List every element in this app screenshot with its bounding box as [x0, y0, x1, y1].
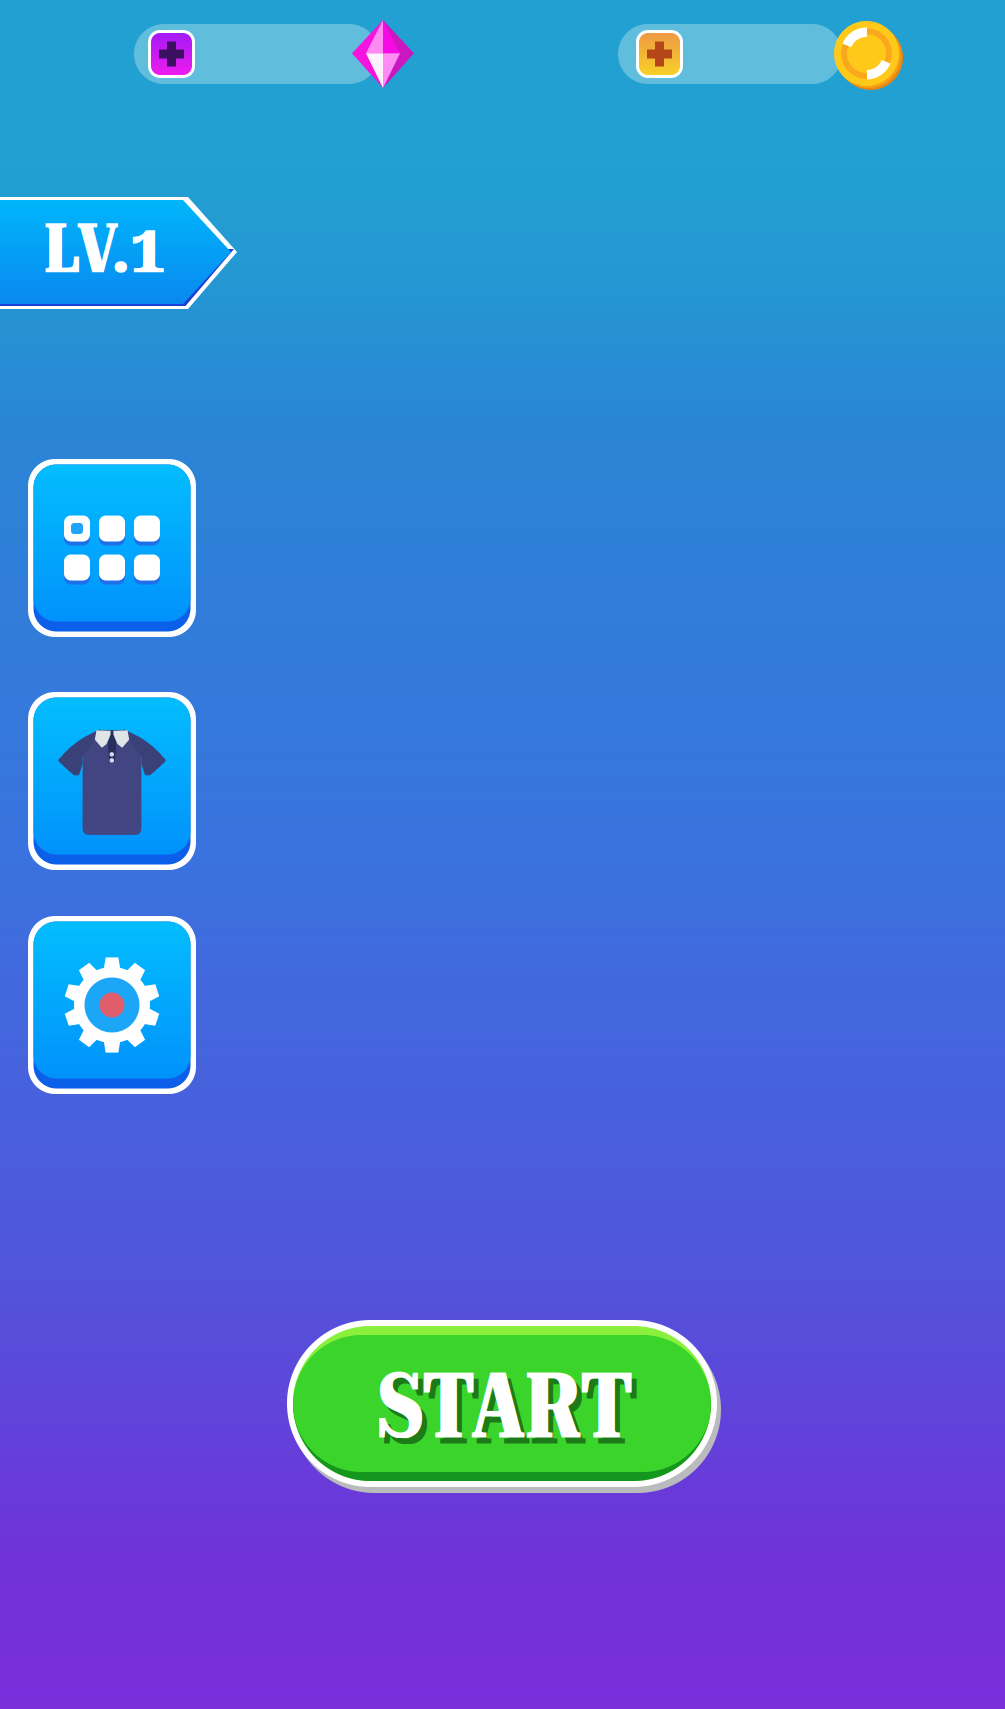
button[interactable]: Add gems — [134, 24, 414, 92]
button[interactable]: START — [287, 1320, 723, 1495]
button[interactable]: Levels — [28, 459, 196, 637]
staticText: START — [382, 1359, 638, 1466]
button[interactable]: Settings — [28, 916, 196, 1094]
staticText: START — [377, 1353, 633, 1460]
button[interactable]: Wardrobe — [28, 692, 196, 870]
button[interactable]: Add coins — [618, 24, 902, 92]
staticText: LV.1 — [44, 208, 166, 289]
